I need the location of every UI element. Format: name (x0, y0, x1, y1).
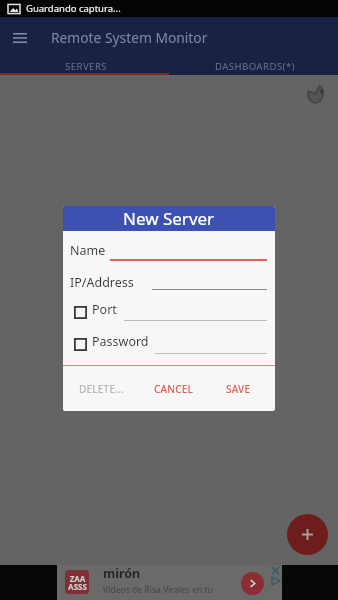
staticText: ZAA ASSS (68, 573, 87, 592)
button[interactable]: Add server (287, 514, 328, 555)
button[interactable]: Port (74, 301, 117, 318)
button[interactable]: Open ad (241, 572, 264, 595)
staticText: Port (92, 301, 117, 318)
staticText: Guardando captura... (26, 2, 121, 15)
staticText: New Server (123, 207, 215, 230)
button[interactable]: Open navigation menu (6, 24, 34, 52)
staticText: DASHBOARDS(*) (215, 60, 296, 73)
staticText: Password (92, 333, 149, 350)
button[interactable]: SERVERS (0, 58, 169, 75)
button[interactable]: DELETE... (73, 375, 130, 403)
button[interactable]: DASHBOARDS(*) (169, 58, 338, 75)
staticText: DELETE... (79, 382, 124, 396)
staticText: CANCEL (154, 382, 194, 396)
button[interactable]: SAVE (220, 375, 257, 403)
button[interactable]: Advertiser logo (65, 570, 89, 594)
staticText: Name (70, 242, 106, 259)
staticText: IP/Address (70, 274, 134, 291)
staticText: Remote System Monitor (51, 28, 208, 47)
staticText: mirón (103, 565, 141, 582)
staticText: SAVE (226, 382, 251, 396)
button[interactable]: Password (74, 333, 149, 350)
button[interactable]: CANCEL (148, 375, 200, 403)
staticText: Vídeos de Risa Virales en tu (103, 584, 213, 596)
staticText: SERVERS (65, 60, 108, 73)
